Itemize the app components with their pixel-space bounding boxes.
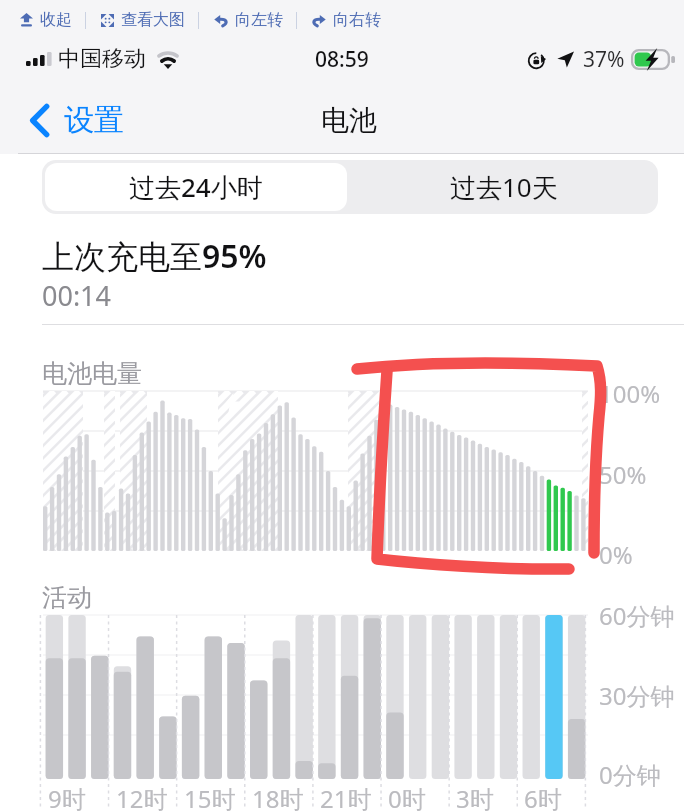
staticText: 过去24小时: [129, 169, 263, 205]
staticText: 中国移动: [58, 45, 146, 73]
staticText: 向右转: [333, 10, 381, 30]
staticText: 0%: [599, 538, 633, 571]
other: Rotation lock: [528, 51, 546, 69]
staticText: 12时: [116, 782, 168, 812]
staticText: 6时: [524, 782, 562, 812]
staticText: 30分钟: [599, 679, 675, 712]
staticText: 查看大图: [121, 10, 185, 30]
staticText: 100%: [599, 377, 661, 410]
button[interactable]: 向右转: [312, 10, 381, 30]
staticText: 3时: [456, 782, 494, 812]
staticText: 上次充电至95%: [42, 234, 267, 278]
staticText: 21时: [320, 782, 372, 812]
staticText: 9时: [48, 782, 86, 812]
staticText: 18时: [252, 782, 304, 812]
button[interactable]: 设置: [30, 101, 130, 139]
staticText: 向左转: [235, 10, 283, 30]
staticText: 50%: [599, 458, 647, 491]
button[interactable]: 查看大图: [101, 10, 185, 30]
staticText: 0分钟: [599, 758, 661, 791]
other: Location: [557, 51, 574, 68]
staticText: 00:14: [42, 277, 112, 314]
staticText: 15时: [184, 782, 236, 812]
button[interactable]: 过去10天: [350, 160, 658, 214]
staticText: 活动: [42, 582, 92, 613]
staticText: 电池电量: [42, 358, 142, 389]
button[interactable]: 过去24小时: [45, 163, 347, 211]
staticText: 08:59: [315, 45, 369, 74]
staticText: 收起: [40, 10, 72, 30]
staticText: 过去10天: [450, 169, 558, 205]
staticText: 37%: [583, 45, 625, 74]
staticText: 60分钟: [599, 599, 675, 632]
staticText: 0时: [388, 782, 426, 812]
staticText: 电池: [321, 103, 377, 138]
staticText: 设置: [64, 101, 124, 139]
button[interactable]: 向左转: [214, 10, 283, 30]
button[interactable]: 收起: [20, 10, 72, 30]
